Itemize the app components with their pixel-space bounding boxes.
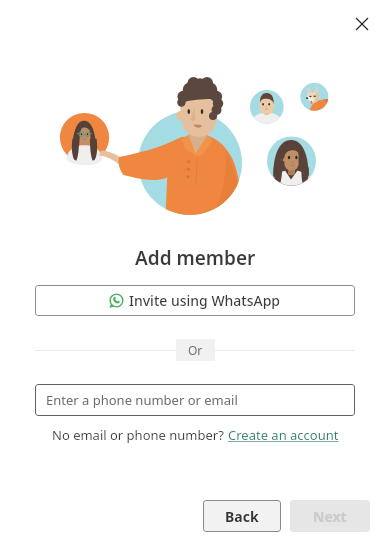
staticText: Back [225,507,259,526]
staticText: Create an account [228,426,339,444]
staticText: Next [313,507,347,526]
button[interactable]: Enter a phone number or email [35,384,355,416]
button[interactable]: Close [345,7,379,41]
button[interactable]: Back [203,500,281,532]
staticText: Add member [135,245,256,271]
button[interactable]: Next [290,500,370,532]
button[interactable]: Invite using WhatsApp [35,285,355,316]
button[interactable]: Create an account [228,426,339,444]
staticText: No email or phone number? [52,426,228,444]
staticText: Enter a phone number or email [46,391,238,409]
staticText: Or [188,342,203,358]
staticText: Invite using WhatsApp [129,291,281,310]
